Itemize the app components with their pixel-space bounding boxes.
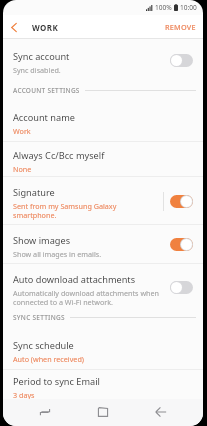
button[interactable]: Show images [3,225,203,264]
button[interactable]: Sync account [3,39,203,81]
button[interactable]: Period to sync Email [3,370,203,400]
staticText: Period to sync Email [13,375,100,388]
staticText: Auto download attachments [13,273,136,286]
button[interactable]: Sync schedule [3,328,203,370]
staticText: Work [13,126,31,136]
button[interactable]: Recent apps [16,399,74,426]
staticText: 3 days [13,390,35,400]
staticText: Sync account [13,50,70,63]
staticText: Show all images in emails. [13,249,102,259]
button[interactable]: Sync account [170,54,193,67]
staticText: WORK [32,22,59,33]
staticText: Automatically download attachments when … [13,288,164,307]
button[interactable]: Auto download attachments [170,281,193,294]
button[interactable]: Auto download attachments [3,264,203,311]
staticText: Sync schedule [13,339,74,352]
button[interactable]: REMOVE [158,17,203,37]
staticText: Sent from my Samsung Galaxy smartphone. [13,201,155,220]
button[interactable]: Show images [170,238,193,251]
button[interactable]: Account name [3,101,203,142]
staticText: Show images [13,234,71,247]
staticText: 10:00 [180,3,197,12]
button[interactable]: Always Cc/Bcc myself [3,142,203,177]
staticText: Sync disabled. [13,65,61,75]
staticText: ACCOUNT SETTINGS [13,86,80,95]
staticText: REMOVE [165,22,196,32]
staticText: Account name [13,111,75,124]
button[interactable]: Signature [170,195,193,208]
staticText: Always Cc/Bcc myself [13,149,105,162]
staticText: Auto (when received) [13,354,84,364]
button[interactable]: Back [3,16,24,39]
staticText: Signature [13,186,55,199]
staticText: None [13,164,32,174]
staticText: SYNC SETTINGS [13,313,65,322]
button[interactable]: Back [132,399,190,426]
staticText: 100% [155,3,172,12]
button[interactable]: Home [74,399,132,426]
button[interactable]: Signature [3,177,203,225]
